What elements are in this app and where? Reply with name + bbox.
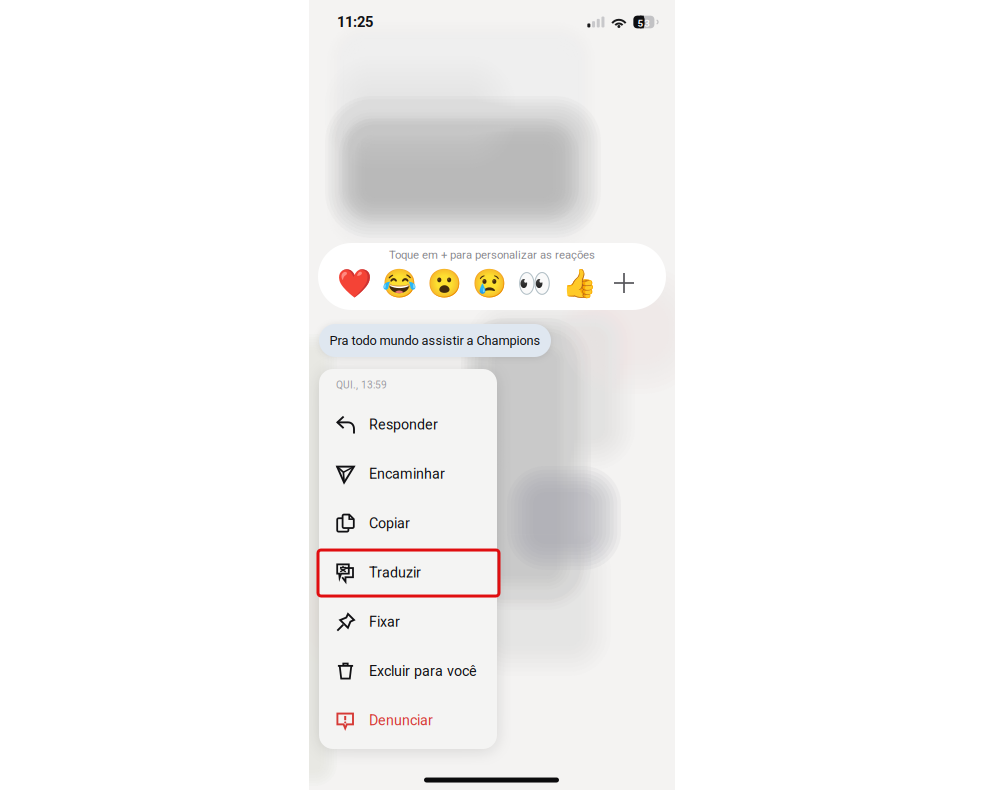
button[interactable]: Traduzir	[319, 548, 497, 597]
staticText: Encaminhar	[369, 466, 445, 482]
button[interactable]: Triste	[467, 264, 512, 302]
button[interactable]: Coração	[332, 264, 377, 302]
button[interactable]: Rindo	[377, 264, 422, 302]
staticText: Toque em + para personalizar as reações	[389, 248, 595, 262]
button[interactable]: Personalizar reações	[602, 264, 646, 302]
button[interactable]: Surpreso	[422, 264, 467, 302]
staticText: 😮	[427, 267, 462, 299]
staticText: Responder	[369, 416, 438, 433]
staticText: 11:25	[337, 13, 373, 31]
staticText: Copiar	[369, 515, 410, 532]
staticText: Excluir para você	[369, 663, 477, 679]
staticText: 5	[638, 18, 644, 29]
staticText: 😂	[382, 267, 417, 299]
staticText: 3	[644, 18, 650, 29]
staticText: 👍	[562, 267, 597, 299]
staticText: Pra todo mundo assistir a Champions	[329, 333, 540, 348]
button[interactable]: Excluir para você	[319, 646, 497, 696]
staticText: 👀	[517, 267, 552, 299]
button[interactable]: Copiar	[319, 499, 497, 548]
button[interactable]: Denunciar	[319, 696, 497, 745]
staticText: Fixar	[369, 613, 400, 630]
button[interactable]: Fixar	[319, 597, 497, 646]
staticText: ❤️	[337, 267, 372, 299]
button[interactable]: Responder	[319, 400, 497, 449]
button[interactable]: Curtir	[557, 264, 602, 302]
button[interactable]: Olhos	[512, 264, 557, 302]
staticText: 😢	[472, 267, 507, 299]
staticText: QUI., 13:59	[336, 379, 387, 391]
button[interactable]: Encaminhar	[319, 449, 497, 499]
staticText: Denunciar	[369, 712, 433, 729]
staticText: Traduzir	[369, 564, 421, 581]
